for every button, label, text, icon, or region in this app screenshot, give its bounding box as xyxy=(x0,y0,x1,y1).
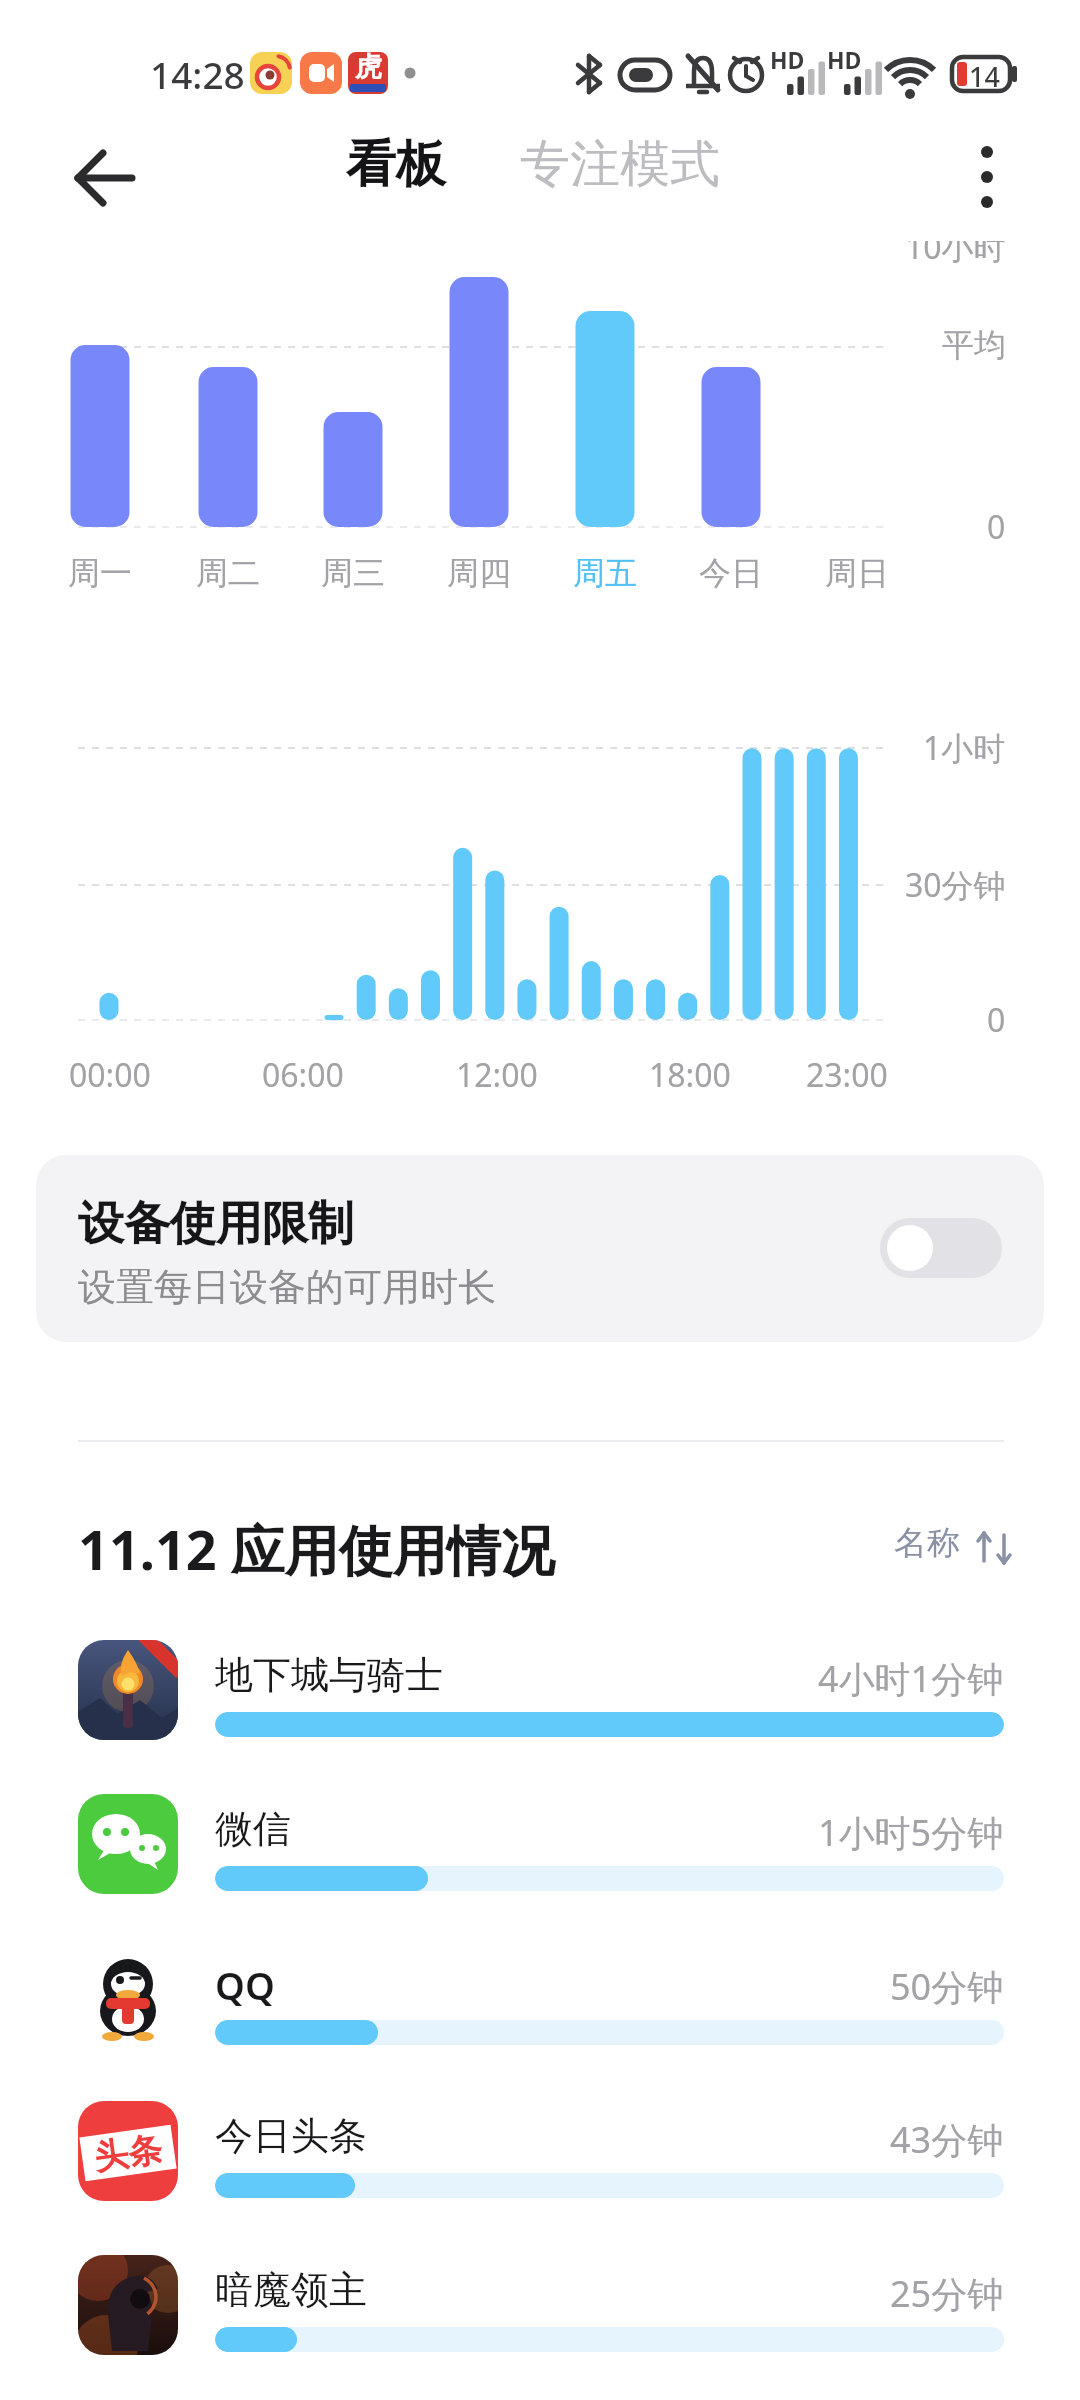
staticText: 周日 xyxy=(825,553,889,593)
staticText: 1小时5分钟 xyxy=(818,1808,1004,1857)
button[interactable] xyxy=(60,138,152,218)
staticText: 43分钟 xyxy=(890,2115,1004,2164)
button[interactable]: 头条 xyxy=(78,2101,1004,2221)
staticText: 14 xyxy=(969,58,1000,95)
staticText: 06:00 xyxy=(262,1053,344,1097)
staticText: 看板 xyxy=(346,133,446,196)
staticText: 0 xyxy=(987,998,1006,1042)
staticText: 周三 xyxy=(321,553,385,593)
button[interactable]: 地下城与骑士 xyxy=(78,1640,1004,1760)
staticText: 12:00 xyxy=(456,1053,538,1097)
staticText: 微信 xyxy=(215,1805,291,1853)
staticText: 1小时 xyxy=(923,726,1006,770)
staticText: 设备使用限制 xyxy=(78,1195,354,1253)
button[interactable] xyxy=(880,1218,1002,1278)
staticText: 今日头条 xyxy=(215,2112,367,2160)
staticText: 平均 xyxy=(942,325,1006,365)
staticText: 地下城与骑士 xyxy=(215,1651,443,1699)
staticText: 周四 xyxy=(447,553,511,593)
button[interactable]: 名称 xyxy=(870,1505,1030,1575)
staticText: 4小时1分钟 xyxy=(818,1654,1004,1703)
staticText: HD xyxy=(827,44,862,75)
button[interactable]: 暗魔领主 xyxy=(78,2255,1004,2375)
staticText: 0 xyxy=(987,505,1006,549)
button[interactable] xyxy=(950,135,1030,220)
staticText: 今日 xyxy=(699,553,763,593)
staticText: 头条 xyxy=(91,2127,165,2179)
staticText: 专注模式 xyxy=(520,133,720,196)
staticText: 50分钟 xyxy=(890,1962,1004,2011)
staticText: 18:00 xyxy=(649,1053,731,1097)
button[interactable]: 专注模式 xyxy=(505,128,745,208)
staticText: 周一 xyxy=(68,553,132,593)
staticText: 暗魔领主 xyxy=(215,2266,367,2314)
staticText: 名称 xyxy=(894,1522,960,1564)
staticText: 00:00 xyxy=(69,1053,151,1097)
staticText: 设置每日设备的可用时长 xyxy=(78,1263,496,1311)
staticText: 10小时 xyxy=(905,225,1006,269)
button[interactable]: 微信 xyxy=(78,1794,1004,1914)
staticText: 23:00 xyxy=(806,1053,888,1097)
button[interactable]: 看板 xyxy=(340,128,465,208)
staticText: 11.12 应用使用情况 xyxy=(78,1512,555,1586)
button[interactable]: QQ xyxy=(78,1948,1004,2068)
staticText: 25分钟 xyxy=(890,2269,1004,2318)
staticText: 14:28 xyxy=(150,49,245,99)
staticText: HD xyxy=(770,44,805,75)
button[interactable]: 设备使用限制 xyxy=(36,1155,1044,1342)
staticText: 虎 xyxy=(355,50,382,84)
staticText: 30分钟 xyxy=(905,863,1006,907)
staticText: 周二 xyxy=(196,553,260,593)
staticText: QQ xyxy=(215,1959,275,2011)
staticText: 周五 xyxy=(573,553,637,593)
